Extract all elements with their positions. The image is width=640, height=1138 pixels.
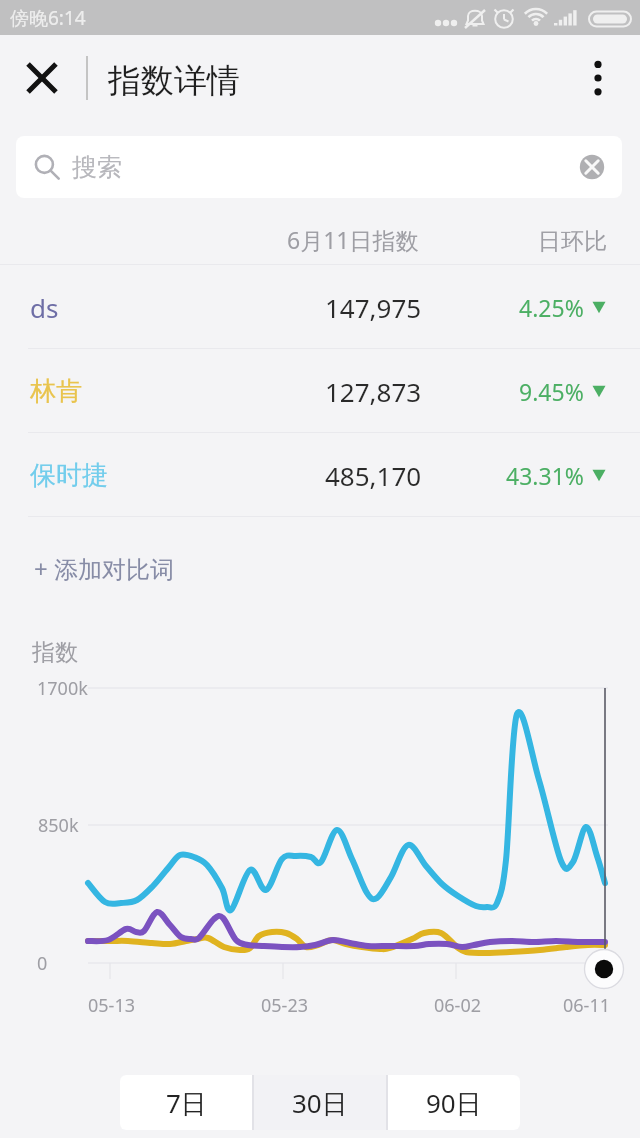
staticText: 127,873 — [325, 374, 422, 409]
staticText: 90日 — [426, 1085, 482, 1121]
staticText: ds — [30, 290, 59, 325]
staticText: 43.31% — [506, 460, 584, 491]
staticText: 9.45% — [519, 376, 584, 407]
button[interactable]: 保时捷 — [0, 433, 640, 517]
staticText: 4.25% — [519, 292, 584, 323]
staticText: 0 — [37, 951, 48, 976]
staticText: 指数 — [32, 638, 78, 667]
staticText: 保时捷 — [30, 459, 108, 492]
staticText: 850k — [38, 813, 79, 838]
button[interactable]: + 添加对比词 — [34, 538, 174, 598]
button[interactable]: 90日 — [388, 1075, 520, 1130]
staticText: 搜索 — [72, 152, 122, 183]
staticText: 日环比 — [538, 227, 607, 256]
button[interactable]: 搜索 — [16, 136, 622, 198]
staticText: + 添加对比词 — [34, 552, 174, 585]
button[interactable]: Close — [12, 48, 72, 108]
staticText: 6月11日指数 — [287, 224, 419, 255]
staticText: 指数详情 — [108, 60, 240, 102]
staticText: 7日 — [166, 1085, 207, 1121]
staticText: 05-13 — [88, 993, 135, 1018]
button[interactable]: 30日 — [254, 1075, 386, 1130]
staticText: 30日 — [292, 1085, 348, 1121]
staticText: 147,975 — [325, 290, 422, 325]
staticText: 05-23 — [261, 993, 308, 1018]
staticText: 林肯 — [30, 375, 82, 408]
staticText: 1700k — [37, 676, 88, 701]
button[interactable]: 7日 — [120, 1075, 252, 1130]
button[interactable]: More options — [568, 48, 628, 108]
button[interactable]: ds — [0, 265, 640, 349]
staticText: 傍晚6:14 — [10, 5, 86, 31]
staticText: 06-02 — [434, 993, 481, 1018]
button[interactable]: 林肯 — [0, 349, 640, 433]
button[interactable]: Clear search — [572, 147, 612, 187]
staticText: 06-11 — [563, 993, 610, 1018]
staticText: 485,170 — [325, 458, 422, 493]
